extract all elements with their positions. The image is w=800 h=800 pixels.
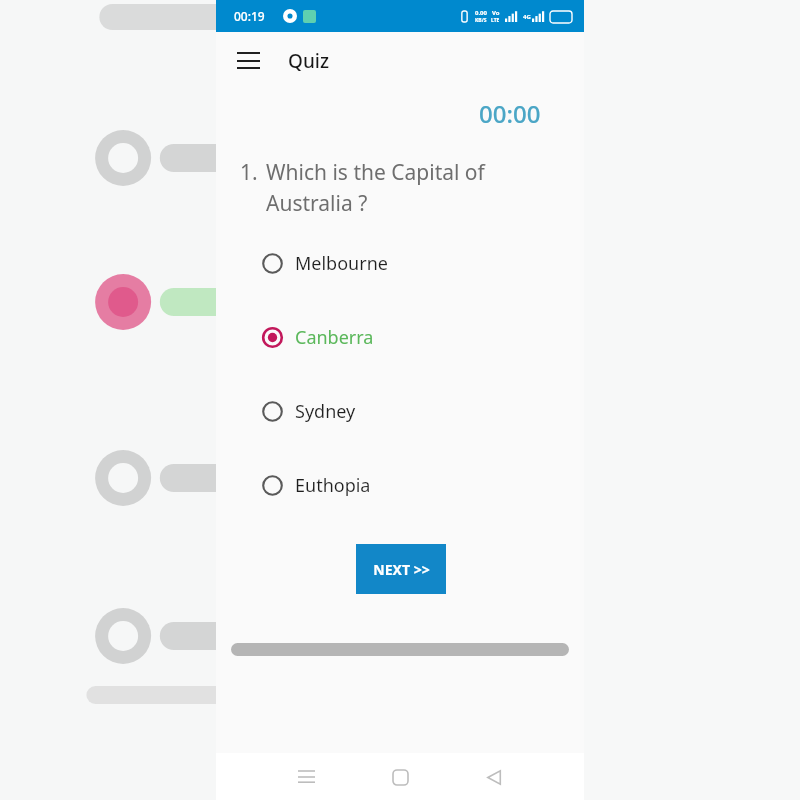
staticText: KB/S (475, 17, 487, 24)
button[interactable]: Euthopia (216, 469, 584, 501)
staticText: NEXT >> (373, 560, 430, 579)
staticText: 00:00 (479, 97, 541, 130)
button[interactable] (231, 643, 569, 656)
staticText: Sydney (295, 399, 356, 424)
staticText: 1. (240, 158, 258, 187)
staticText: Euthopia (295, 473, 371, 498)
button[interactable]: Back (474, 757, 514, 797)
staticText: Quiz (288, 48, 330, 74)
button[interactable]: Home (380, 757, 420, 797)
button[interactable]: Open navigation menu (226, 39, 270, 83)
button[interactable]: Sydney (216, 395, 584, 427)
staticText: Which is the Capital of Australia ? (266, 158, 536, 217)
staticText: 0.00 (475, 9, 487, 17)
staticText: 4G (523, 13, 531, 21)
button[interactable]: Melbourne (216, 247, 584, 279)
staticText: Melbourne (295, 251, 388, 276)
staticText: Vo (492, 9, 500, 17)
button[interactable]: Recent apps (286, 757, 326, 797)
staticText: LTE (491, 17, 500, 24)
button[interactable]: NEXT >> (356, 544, 446, 594)
staticText: 00:19 (234, 8, 265, 24)
button[interactable]: Canberra (216, 321, 584, 353)
staticText: Canberra (295, 325, 374, 350)
